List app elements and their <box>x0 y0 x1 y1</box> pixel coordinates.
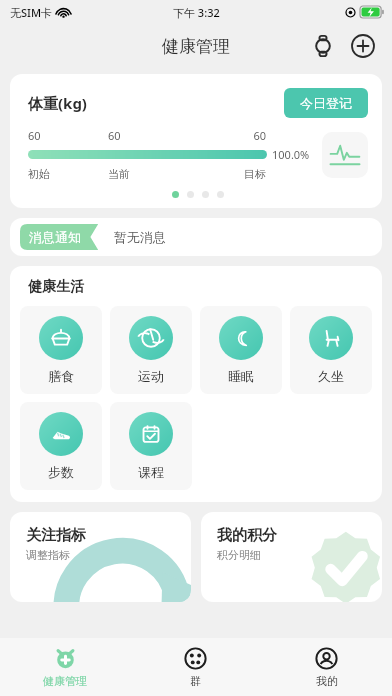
button[interactable]: Trend chart <box>322 132 368 178</box>
button[interactable]: 睡眠 <box>200 306 282 394</box>
staticText: 久坐 <box>318 368 344 384</box>
staticText: 目标 <box>187 167 266 181</box>
staticText: 消息通知 <box>29 229 81 245</box>
staticText: 无SIM卡 <box>10 5 53 20</box>
staticText: 睡眠 <box>228 368 254 384</box>
staticText: 群 <box>190 674 201 688</box>
staticText: 今日登记 <box>300 95 352 111</box>
button[interactable]: 课程 <box>110 402 192 490</box>
staticText: 健康管理 <box>43 674 87 688</box>
staticText: 步数 <box>48 464 74 480</box>
staticText: 100.0% <box>272 147 310 162</box>
button[interactable]: 体重(kg) <box>10 74 382 208</box>
staticText: 下午 3:32 <box>173 5 220 20</box>
staticText: 健康管理 <box>162 36 230 57</box>
button[interactable]: 膳食 <box>20 306 102 394</box>
button[interactable]: 关注指标 <box>10 512 191 602</box>
staticText: 健康生活 <box>28 278 84 296</box>
button[interactable]: 运动 <box>110 306 192 394</box>
staticText: 积分明细 <box>217 548 261 562</box>
button[interactable]: 健康管理 <box>0 638 130 696</box>
staticText: 我的积分 <box>217 526 277 545</box>
staticText: 60 <box>28 128 108 143</box>
button[interactable]: Watch <box>308 31 338 61</box>
staticText: 课程 <box>138 464 164 480</box>
button[interactable]: 久坐 <box>290 306 372 394</box>
staticText: 60 <box>108 128 187 143</box>
staticText: 暂无消息 <box>114 229 166 245</box>
staticText: 调整指标 <box>26 548 70 562</box>
button[interactable]: 消息通知 <box>10 218 382 256</box>
button[interactable]: 我的 <box>261 638 392 696</box>
staticText: 运动 <box>138 368 164 384</box>
button[interactable]: 步数 <box>20 402 102 490</box>
button[interactable]: 我的积分 <box>201 512 382 602</box>
button[interactable]: Add <box>348 31 378 61</box>
staticText: 膳食 <box>48 368 74 384</box>
staticText: 体重(kg) <box>28 93 87 113</box>
staticText: 我的 <box>316 674 338 688</box>
staticText: 当前 <box>108 167 187 181</box>
staticText: 60 <box>187 128 266 143</box>
button[interactable]: 今日登记 <box>284 88 368 118</box>
button[interactable]: 群 <box>130 638 261 696</box>
staticText: 关注指标 <box>26 526 86 545</box>
staticText: 初始 <box>28 167 108 181</box>
